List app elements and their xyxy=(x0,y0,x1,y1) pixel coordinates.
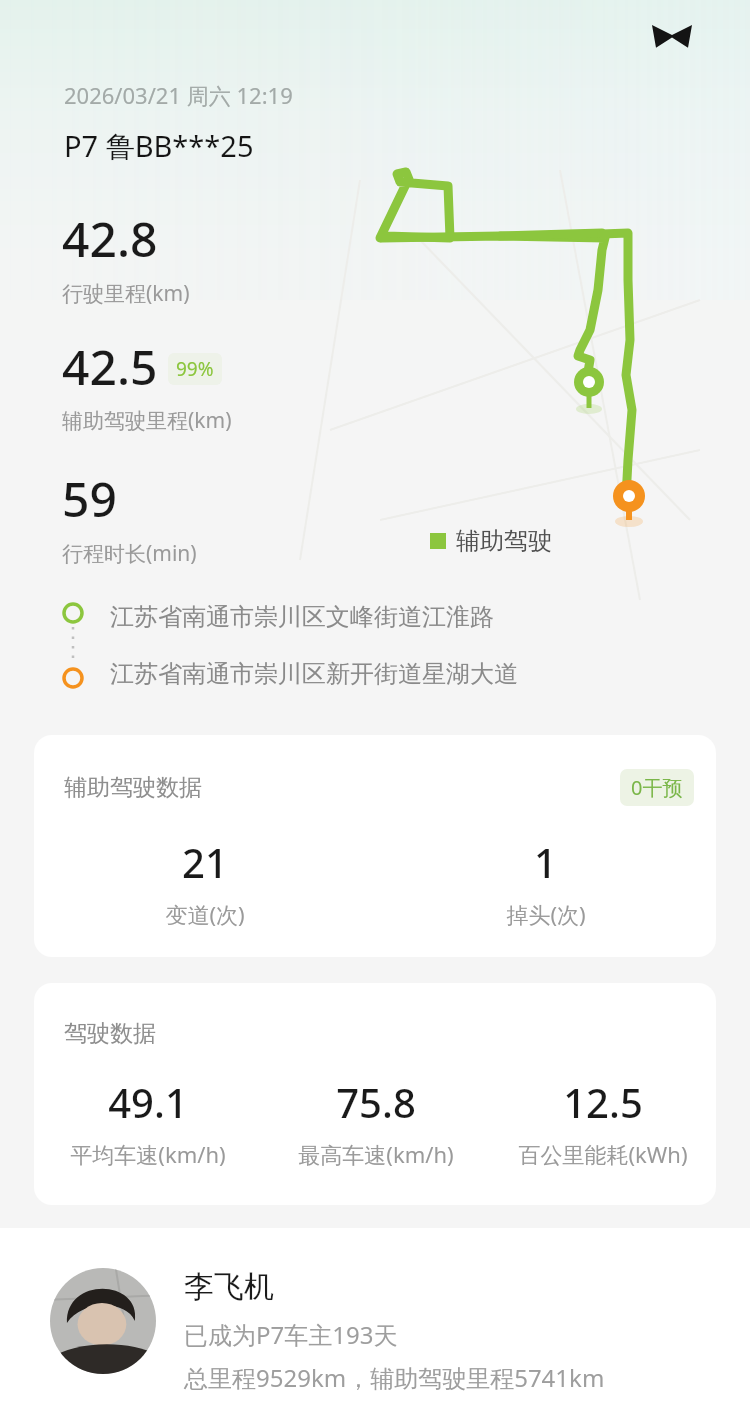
button[interactable]: 李飞机 xyxy=(50,1268,750,1394)
button[interactable]: 75.8 xyxy=(262,1075,489,1169)
button[interactable]: 49.1 xyxy=(34,1075,262,1169)
staticText: 49.1 xyxy=(108,1075,188,1129)
staticText: 42.5 xyxy=(62,334,158,399)
staticText: 掉头(次) xyxy=(506,899,586,929)
staticText: 行驶里程(km) xyxy=(62,279,190,308)
staticText: 42.8 xyxy=(62,206,158,271)
staticText: 百公里能耗(kWh) xyxy=(518,1139,688,1169)
staticText: 辅助驾驶里程(km) xyxy=(62,406,232,435)
staticText: 变道(次) xyxy=(165,899,245,929)
staticText: 0干预 xyxy=(631,774,683,801)
staticText: 江苏省南通市崇川区文峰街道江淮路 xyxy=(110,602,494,632)
button[interactable]: 驾驶数据 xyxy=(34,983,716,1205)
staticText: 12.5 xyxy=(563,1075,643,1129)
button[interactable]: 辅助驾驶数据 xyxy=(34,735,716,957)
staticText: 已成为P7车主193天 xyxy=(184,1318,398,1351)
staticText: 59 xyxy=(62,466,117,531)
staticText: 行程时长(min) xyxy=(62,539,197,568)
staticText: 江苏省南通市崇川区新开街道星湖大道 xyxy=(110,659,518,689)
staticText: 总里程9529km，辅助驾驶里程5741km xyxy=(184,1361,605,1394)
staticText: 平均车速(km/h) xyxy=(70,1139,226,1169)
staticText: 驾驶数据 xyxy=(64,1019,156,1048)
button[interactable]: XPeng logo xyxy=(650,14,694,58)
staticText: P7 鲁BB***25 xyxy=(64,126,254,166)
staticText: 99% xyxy=(176,356,214,382)
staticText: 最高车速(km/h) xyxy=(298,1139,454,1169)
button[interactable]: 12.5 xyxy=(489,1075,716,1169)
button[interactable]: 1 xyxy=(375,835,716,929)
staticText: 辅助驾驶 xyxy=(456,526,552,556)
staticText: 2026/03/21 周六 12:19 xyxy=(64,80,293,110)
button[interactable]: 21 xyxy=(34,835,375,929)
staticText: 辅助驾驶数据 xyxy=(64,773,202,802)
staticText: 75.8 xyxy=(336,1075,416,1129)
staticText: 李飞机 xyxy=(184,1268,274,1306)
staticText: 21 xyxy=(182,835,228,889)
staticText: 1 xyxy=(534,835,557,889)
